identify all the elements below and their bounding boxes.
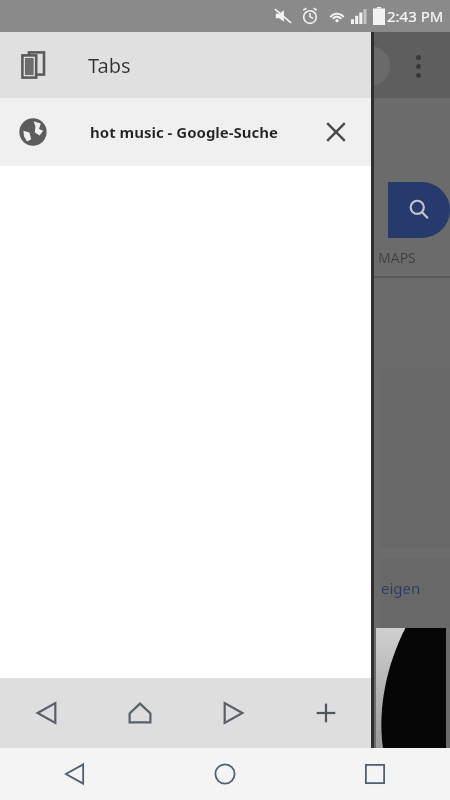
button[interactable]: New tab xyxy=(279,678,372,748)
staticText: Tabs xyxy=(88,52,131,79)
staticText: 2:43 PM xyxy=(387,6,444,26)
button[interactable]: Forward xyxy=(186,678,279,748)
button[interactable]: Home xyxy=(150,748,300,800)
button[interactable]: Back xyxy=(0,678,93,748)
staticText: hot music - Google-Suche xyxy=(90,122,310,142)
button[interactable]: Home xyxy=(93,678,186,748)
staticText: eigen xyxy=(381,578,421,598)
staticText: MAPS xyxy=(378,248,416,267)
button[interactable]: hot music - Google-Suche xyxy=(0,98,372,166)
button[interactable]: Recents xyxy=(300,748,450,800)
button[interactable]: Tabs xyxy=(0,32,372,98)
button[interactable]: Back xyxy=(0,748,150,800)
button[interactable]: Close tab xyxy=(310,106,362,158)
